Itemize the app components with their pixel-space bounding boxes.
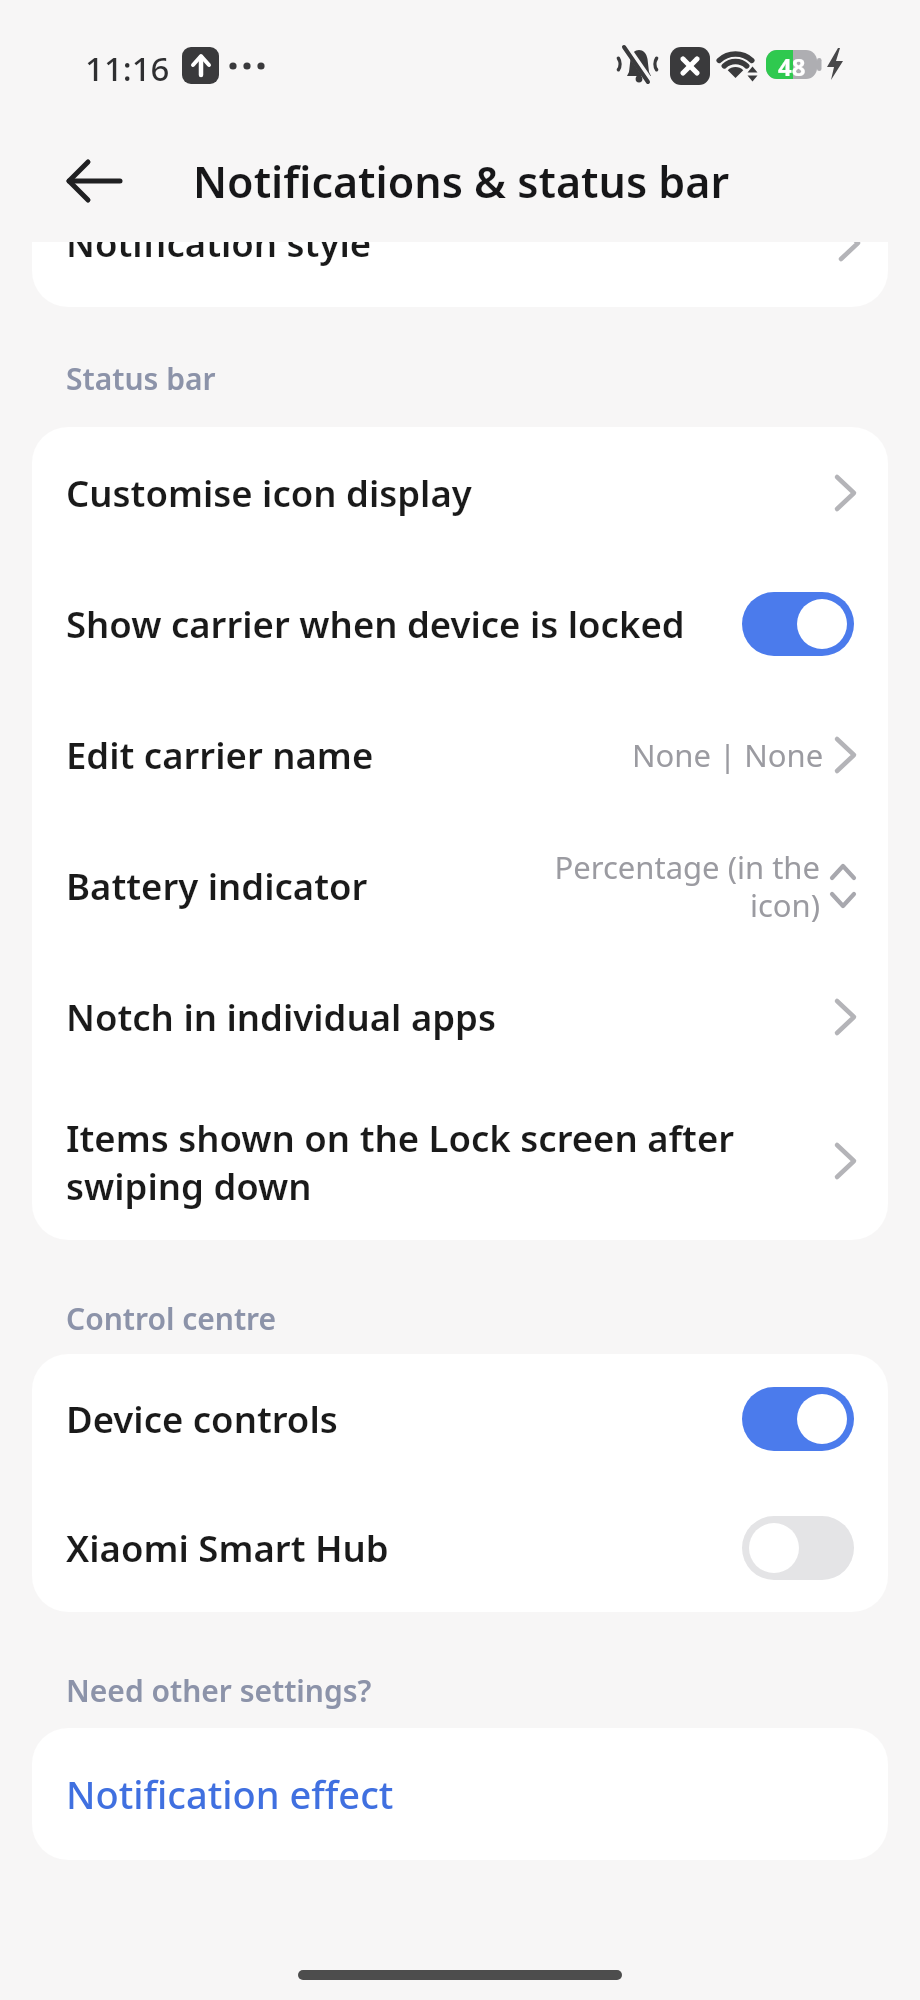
button[interactable]: Notification style (32, 242, 888, 307)
button[interactable]: Items shown on the Lock screen after swi… (32, 1082, 888, 1240)
button[interactable]: Notch in individual apps (32, 951, 888, 1082)
staticText: Control centre (66, 1298, 277, 1339)
button[interactable]: Notification effect (32, 1728, 888, 1860)
button[interactable] (66, 160, 124, 202)
staticText: None | None (632, 734, 824, 776)
staticText: Battery indicator (66, 861, 368, 911)
button[interactable] (742, 1387, 854, 1451)
button[interactable]: Xiaomi Smart Hub (32, 1483, 888, 1612)
staticText: Notification style (66, 242, 372, 268)
staticText: Notification effect (66, 1768, 394, 1820)
staticText: Percentage (in the icon) (554, 846, 820, 926)
staticText: Notch in individual apps (66, 992, 496, 1042)
button[interactable]: Device controls (32, 1354, 888, 1483)
staticText: 48 (778, 50, 806, 79)
staticText: Need other settings? (66, 1670, 372, 1711)
button[interactable]: Customise icon display (32, 427, 888, 558)
button[interactable]: Battery indicator (32, 820, 888, 951)
staticText: Device controls (66, 1394, 338, 1444)
button[interactable] (742, 1516, 854, 1580)
staticText: Xiaomi Smart Hub (66, 1523, 389, 1573)
button[interactable]: Show carrier when device is locked (32, 558, 888, 689)
staticText: Show carrier when device is locked (66, 599, 685, 649)
staticText: Customise icon display (66, 468, 472, 518)
staticText: Edit carrier name (66, 730, 374, 780)
staticText: Status bar (66, 358, 216, 399)
button[interactable]: Edit carrier name (32, 689, 888, 820)
staticText: Items shown on the Lock screen after swi… (66, 1113, 735, 1210)
staticText: Notifications & status bar (193, 152, 730, 211)
button[interactable] (742, 592, 854, 656)
staticText: 11:16 (85, 46, 170, 91)
